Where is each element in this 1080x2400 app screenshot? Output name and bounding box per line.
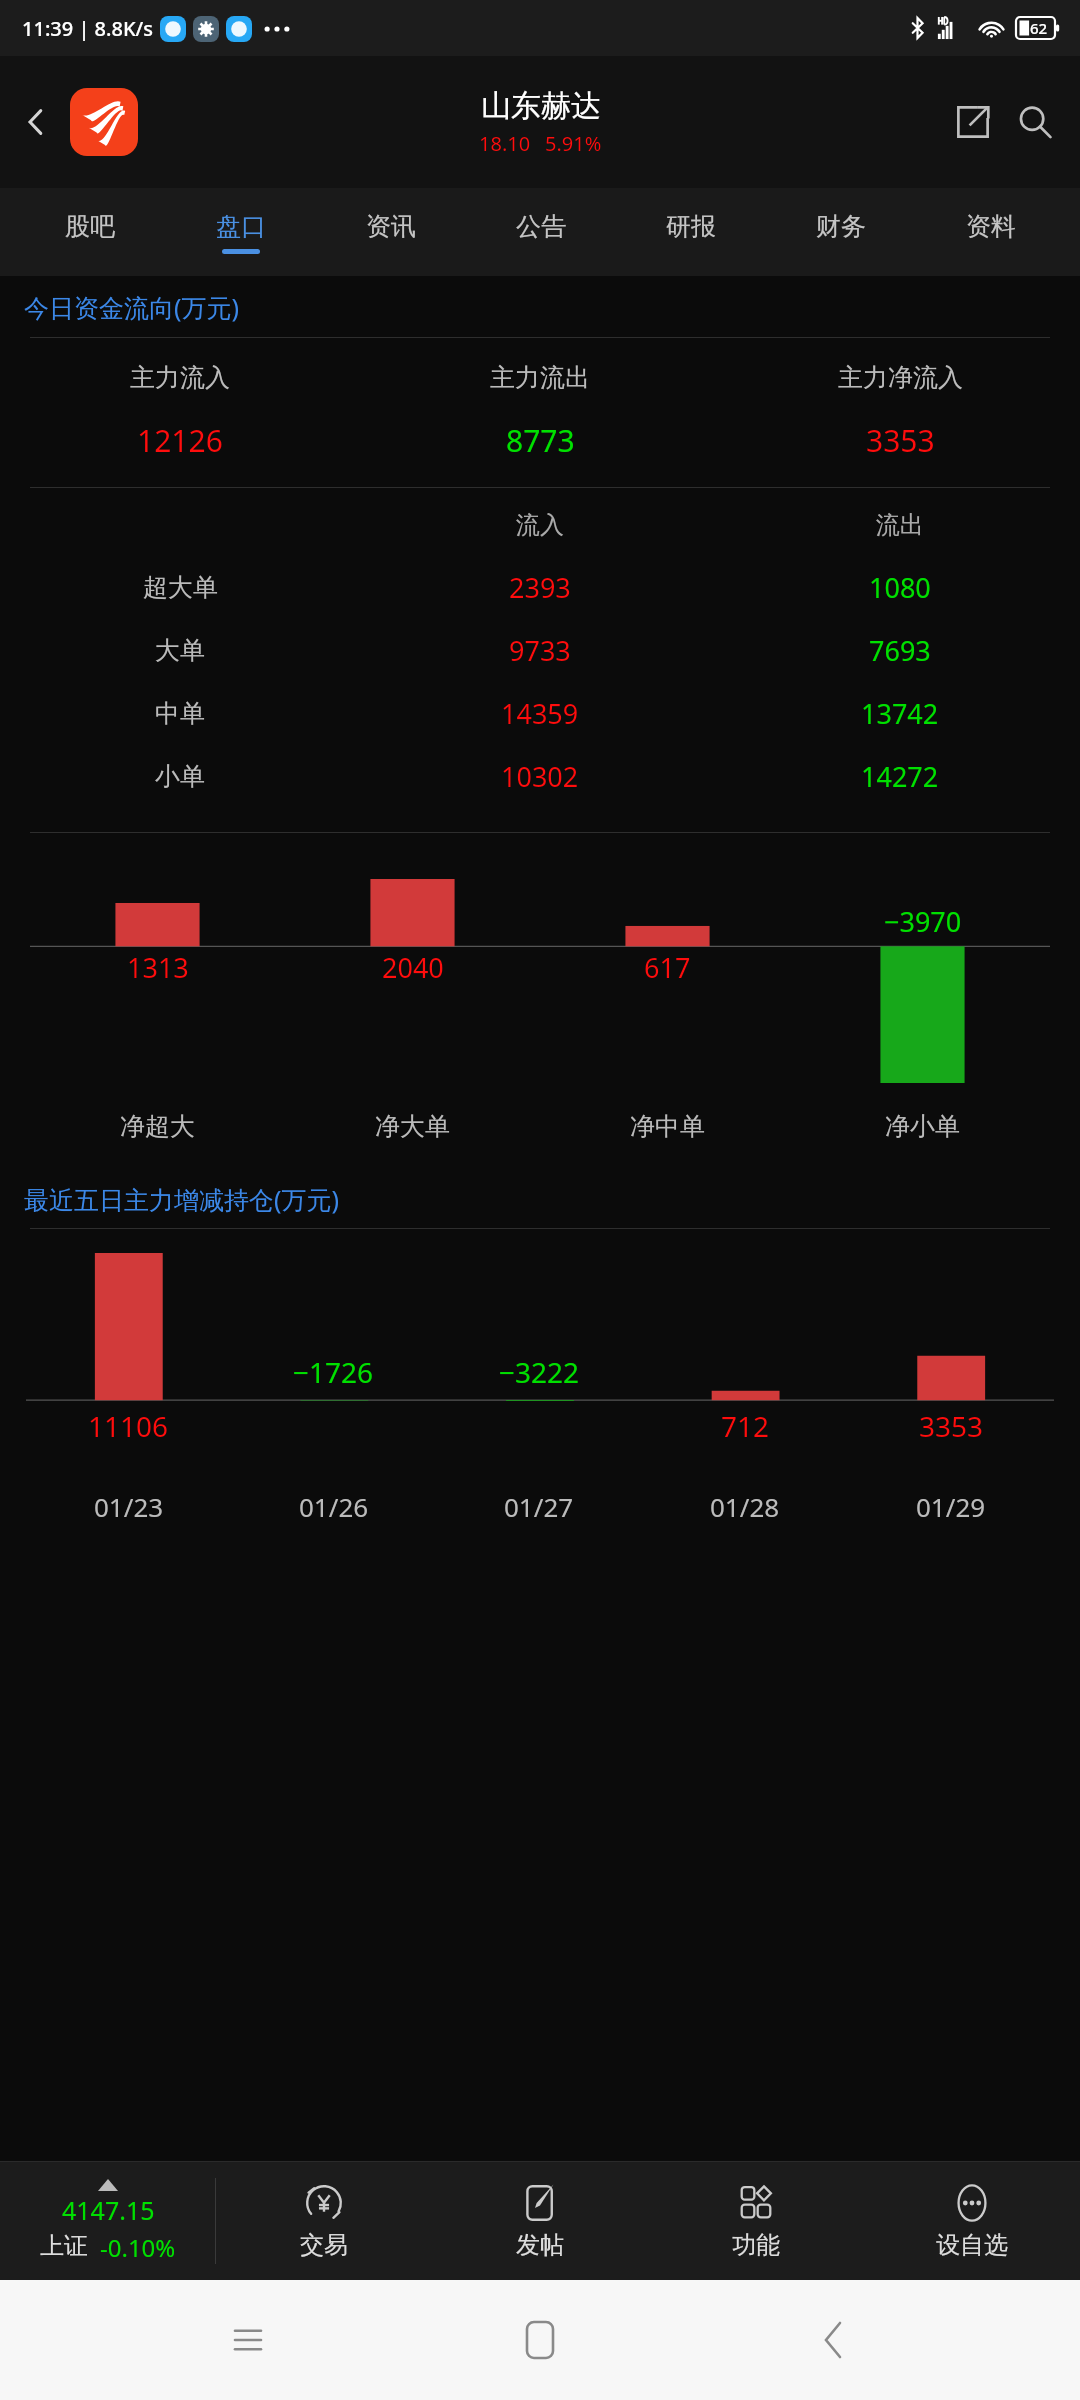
staticText: 13742 [861, 695, 939, 732]
staticText: 主力净流入 [838, 362, 963, 393]
staticText: 小单 [155, 761, 205, 792]
staticText: −3970 [884, 903, 962, 940]
staticText: 01/26 [299, 1489, 369, 1524]
staticText: 公告 [516, 211, 566, 242]
button[interactable]: 股吧 [14, 188, 165, 276]
staticText: 62 [1030, 18, 1048, 38]
staticText: 上证 [40, 2231, 88, 2261]
staticText: 712 [721, 1407, 770, 1445]
staticText: 5.91% [545, 130, 602, 157]
staticText: 4147.15 [62, 2193, 155, 2227]
staticText: 01/23 [94, 1489, 164, 1524]
staticText: 14272 [861, 758, 939, 795]
staticText: 617 [644, 949, 691, 986]
staticText: 14359 [501, 695, 579, 732]
staticText: 中单 [155, 698, 205, 729]
button[interactable]: Post [432, 2162, 648, 2280]
button[interactable]: Recent apps [203, 2295, 293, 2385]
button[interactable]: Share [942, 91, 1004, 153]
staticText: 功能 [732, 2230, 780, 2260]
staticText: 1080 [869, 569, 931, 606]
button[interactable]: 财务 [766, 188, 916, 276]
staticText: 1313 [127, 949, 189, 986]
button[interactable]: Functions [648, 2162, 864, 2280]
staticText: −3222 [499, 1353, 580, 1391]
button[interactable]: 资讯 [316, 188, 466, 276]
staticText: 11106 [88, 1407, 169, 1445]
staticText: 交易 [300, 2230, 348, 2260]
staticText: 今日资金流向(万元) [24, 290, 240, 324]
staticText: 7693 [869, 632, 931, 669]
staticText: 10302 [501, 758, 579, 795]
staticText: 9733 [509, 632, 571, 669]
button[interactable]: Back [788, 2295, 878, 2385]
staticText: 12126 [137, 420, 223, 461]
staticText: 流入 [516, 510, 564, 540]
staticText: 净大单 [375, 1111, 450, 1142]
staticText: 2040 [382, 949, 444, 986]
staticText: 山东赫达 [481, 87, 601, 125]
button[interactable]: Add to watchlist [864, 2162, 1080, 2280]
staticText: 01/27 [504, 1489, 574, 1524]
button[interactable]: 4147.15 [0, 2162, 215, 2280]
button[interactable]: Trade [216, 2162, 432, 2280]
staticText: 净中单 [630, 1111, 705, 1142]
staticText: 净小单 [885, 1111, 960, 1142]
staticText: 3353 [919, 1407, 984, 1445]
staticText: 盘口 [216, 211, 266, 242]
staticText: 主力流入 [130, 362, 230, 393]
button[interactable]: 研报 [616, 188, 766, 276]
button[interactable]: 资料 [916, 188, 1066, 276]
staticText: 设自选 [936, 2230, 1008, 2260]
staticText: 大单 [155, 635, 205, 666]
button[interactable]: Search [1004, 91, 1066, 153]
staticText: 资料 [966, 211, 1016, 242]
button[interactable]: 公告 [466, 188, 616, 276]
staticText: 超大单 [143, 572, 218, 603]
staticText: 主力流出 [490, 362, 590, 393]
staticText: 8773 [506, 420, 575, 461]
staticText: −1726 [293, 1353, 374, 1391]
staticText: 01/29 [916, 1489, 986, 1524]
staticText: 财务 [816, 211, 866, 242]
staticText: 11:39 | 8.8K/s [22, 15, 153, 42]
staticText: -0.10% [100, 2231, 176, 2264]
staticText: 发帖 [516, 2230, 564, 2260]
staticText: 最近五日主力增减持仓(万元) [24, 1182, 340, 1216]
staticText: 研报 [666, 211, 716, 242]
button[interactable]: Home [495, 2295, 585, 2385]
staticText: 3353 [866, 420, 935, 461]
button[interactable]: Back [8, 94, 64, 150]
staticText: 股吧 [65, 211, 115, 242]
button[interactable]: App home [70, 88, 138, 156]
staticText: 流出 [876, 510, 924, 540]
staticText: 01/28 [710, 1489, 780, 1524]
button[interactable]: 盘口 [165, 188, 316, 276]
staticText: 资讯 [366, 211, 416, 242]
staticText: 2393 [509, 569, 571, 606]
staticText: 净超大 [120, 1111, 195, 1142]
staticText: 18.10 [479, 130, 531, 157]
